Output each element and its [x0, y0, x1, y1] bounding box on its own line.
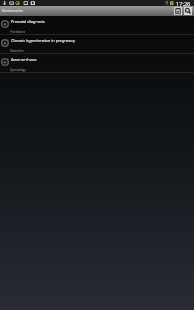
staticText: Prenatal diagnosis: [11, 19, 45, 24]
button[interactable]: Search: [184, 7, 192, 15]
staticText: 17:26: [176, 0, 191, 6]
staticText: Gynecology: [10, 68, 26, 72]
staticText: Bookmarks: [2, 8, 24, 13]
staticText: Procedures: [10, 30, 26, 34]
button[interactable]: Chronic hypertension in pregnancy: [0, 35, 194, 53]
staticText: Amenorrhoea: [11, 57, 37, 62]
staticText: Obstetrics: [10, 49, 24, 53]
button[interactable]: Notes: [174, 7, 182, 15]
staticText: Chronic hypertension in pregnancy: [11, 38, 76, 43]
button[interactable]: Prenatal diagnosis: [0, 16, 194, 34]
button[interactable]: Amenorrhoea: [0, 54, 194, 72]
